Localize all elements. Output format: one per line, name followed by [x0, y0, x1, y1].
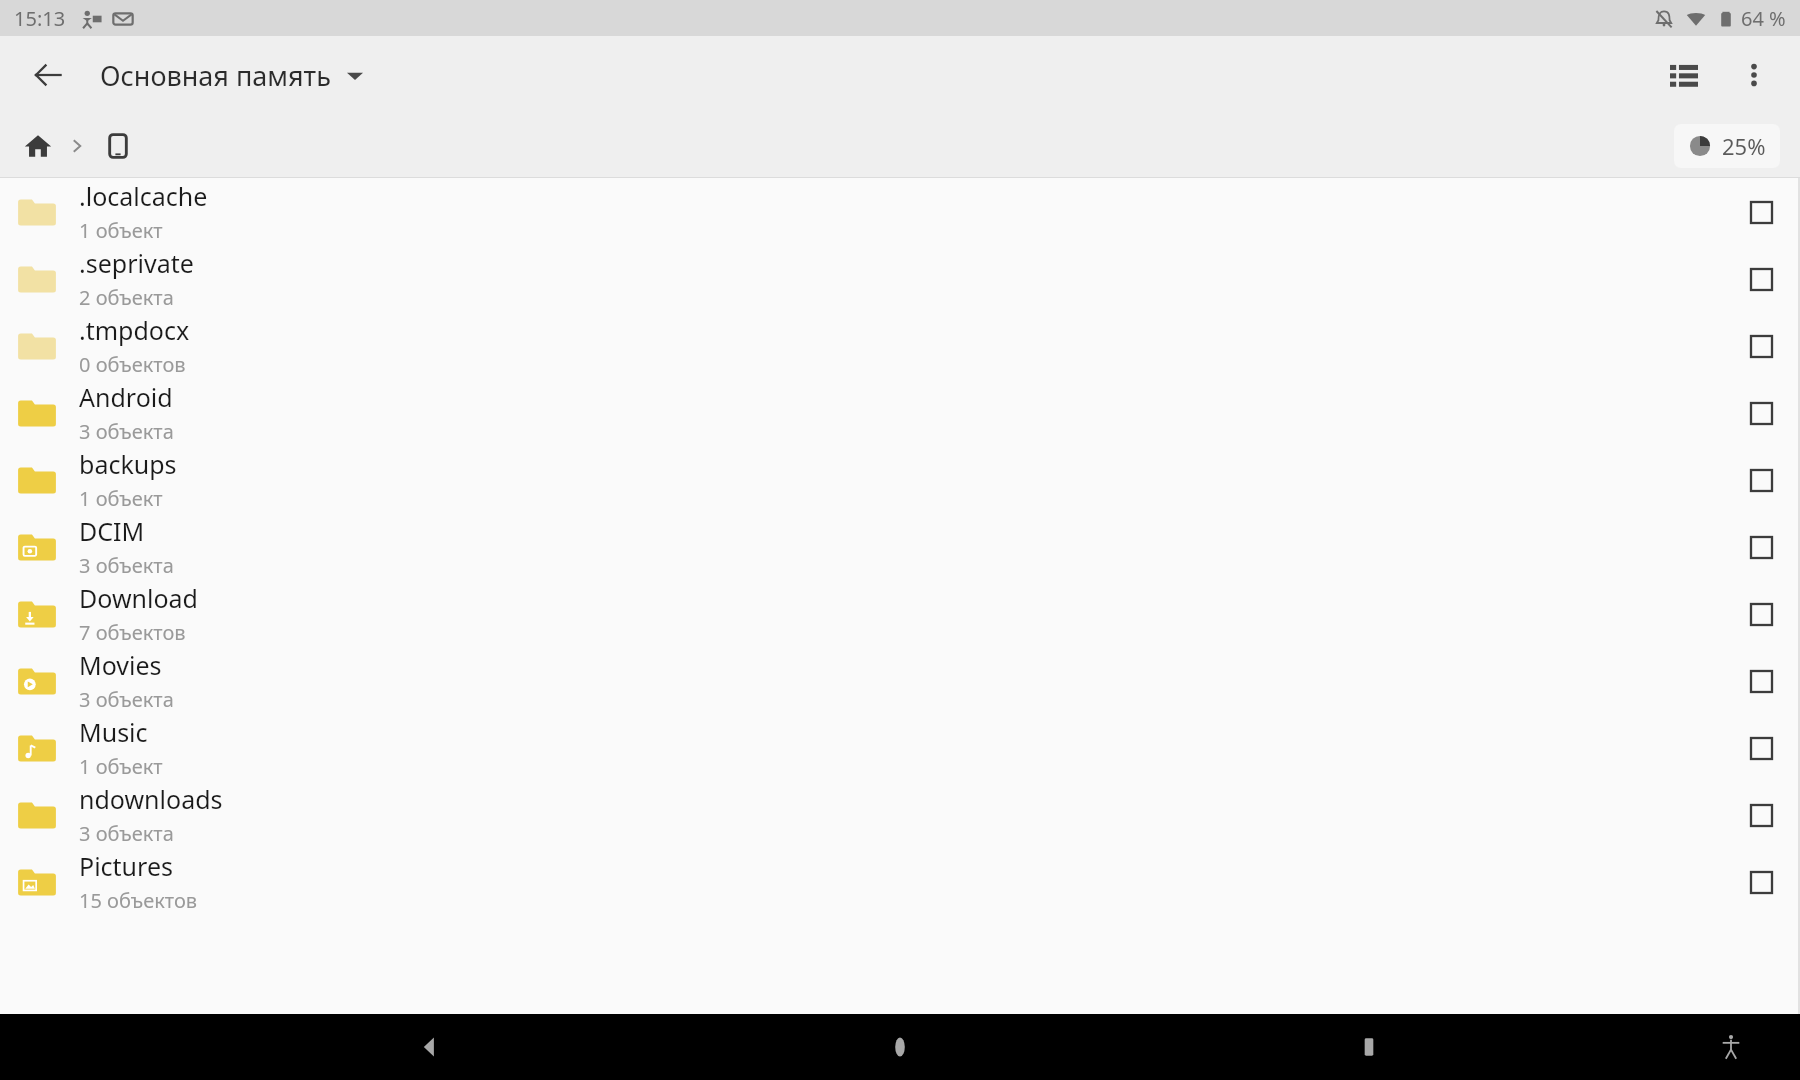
button[interactable]: DCIM	[0, 513, 1800, 580]
button[interactable]: .tmpdocx	[0, 312, 1800, 379]
button[interactable]: Выбрать Android	[1732, 384, 1790, 442]
button[interactable]: Главный экран	[869, 1016, 931, 1078]
staticText: 3 объекта	[79, 552, 174, 579]
button[interactable]: 25%	[1674, 124, 1780, 168]
staticText: DCIM	[79, 514, 145, 548]
button[interactable]: Movies	[0, 647, 1800, 714]
button[interactable]: Выбрать DCIM	[1732, 518, 1790, 576]
button[interactable]: Вид списка	[1656, 47, 1712, 103]
staticText: Movies	[79, 648, 162, 682]
button[interactable]: Выбрать Pictures	[1732, 853, 1790, 911]
button[interactable]: Меню	[1726, 47, 1782, 103]
staticText: 1 объект	[79, 485, 163, 512]
staticText: 1 объект	[79, 753, 163, 780]
button[interactable]: Выбрать .tmpdocx	[1732, 317, 1790, 375]
staticText: 2 объекта	[79, 284, 174, 311]
button[interactable]: Выбрать .localcache	[1732, 183, 1790, 241]
staticText: 0 объектов	[79, 351, 186, 378]
staticText: backups	[79, 447, 177, 481]
staticText: Основная память	[100, 57, 331, 94]
staticText: 3 объекта	[79, 820, 174, 847]
button[interactable]: Music	[0, 714, 1800, 781]
button[interactable]: Выбрать Music	[1732, 719, 1790, 777]
button[interactable]: Выбрать Movies	[1732, 652, 1790, 710]
staticText: 64 %	[1741, 5, 1786, 32]
staticText: ndownloads	[79, 782, 223, 816]
button[interactable]: .seprivate	[0, 245, 1800, 312]
button[interactable]: Главная	[14, 122, 62, 170]
staticText: 25%	[1722, 131, 1766, 161]
staticText: Download	[79, 581, 198, 615]
button[interactable]: Android	[0, 379, 1800, 446]
staticText: Music	[79, 715, 148, 749]
staticText: 3 объекта	[79, 418, 174, 445]
staticText: 15:13	[14, 5, 66, 32]
staticText: Android	[79, 380, 173, 414]
button[interactable]: backups	[0, 446, 1800, 513]
button[interactable]: .localcache	[0, 178, 1800, 245]
button[interactable]: Выбрать backups	[1732, 451, 1790, 509]
staticText: 7 объектов	[79, 619, 186, 646]
button[interactable]: Основная память	[100, 57, 363, 94]
staticText: .tmpdocx	[79, 313, 190, 347]
staticText: Pictures	[79, 849, 173, 883]
button[interactable]: Назад	[400, 1016, 462, 1078]
button[interactable]: Назад	[22, 49, 74, 101]
button[interactable]: Недавние приложения	[1338, 1016, 1400, 1078]
button[interactable]: Pictures	[0, 848, 1800, 915]
button[interactable]: Выбрать .seprivate	[1732, 250, 1790, 308]
staticText: .localcache	[79, 179, 208, 213]
staticText: 15 объектов	[79, 887, 198, 914]
button[interactable]: Выбрать Download	[1732, 585, 1790, 643]
staticText: 3 объекта	[79, 686, 174, 713]
button[interactable]: ndownloads	[0, 781, 1800, 848]
button[interactable]: Выбрать ndownloads	[1732, 786, 1790, 844]
button[interactable]: Download	[0, 580, 1800, 647]
button[interactable]: Основная память	[94, 122, 142, 170]
button[interactable]: Специальные возможности	[1702, 1018, 1760, 1076]
staticText: .seprivate	[79, 246, 194, 280]
staticText: 1 объект	[79, 217, 163, 244]
